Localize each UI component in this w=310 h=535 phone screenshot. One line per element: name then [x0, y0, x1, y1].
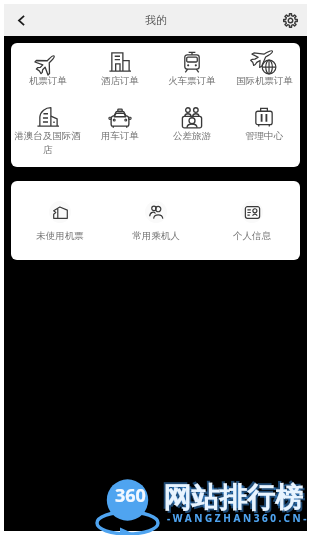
button[interactable]: 酒店订单: [84, 43, 156, 87]
staticText: 个人信息: [233, 230, 271, 242]
button[interactable]: Settings: [273, 4, 307, 36]
staticText: 网站排行榜: [163, 480, 303, 515]
staticText: 国际机票订单: [236, 75, 293, 87]
staticText: 网站排行榜: [165, 482, 305, 517]
staticText: 机票订单: [29, 75, 67, 87]
button[interactable]: 未使用机票: [11, 181, 108, 242]
staticText: 用车订单: [101, 130, 139, 142]
button[interactable]: 管理中心: [228, 98, 300, 142]
staticText: 未使用机票: [36, 230, 84, 242]
button[interactable]: 公差旅游: [156, 98, 228, 142]
staticText: 我的: [145, 13, 167, 27]
staticText: 360: [115, 483, 146, 508]
staticText: 酒店订单: [101, 75, 139, 87]
button[interactable]: 港澳台及国际酒店: [11, 98, 84, 156]
button[interactable]: Back: [4, 4, 38, 36]
button[interactable]: 常用乘机人: [108, 181, 204, 242]
staticText: 常用乘机人: [132, 230, 180, 242]
staticText: 港澳台及国际酒店: [12, 130, 83, 156]
staticText: 网站排行榜: [161, 478, 301, 513]
staticText: 火车票订单: [168, 75, 216, 87]
staticText: 公差旅游: [173, 130, 211, 142]
button[interactable]: 个人信息: [204, 181, 300, 242]
button[interactable]: 国际机票订单: [228, 43, 300, 87]
button[interactable]: 机票订单: [11, 43, 84, 87]
button[interactable]: 火车票订单: [156, 43, 228, 87]
staticText: 管理中心: [245, 130, 283, 142]
staticText: -WANGZHAN360.CN-: [167, 511, 310, 525]
button[interactable]: 用车订单: [84, 98, 156, 142]
